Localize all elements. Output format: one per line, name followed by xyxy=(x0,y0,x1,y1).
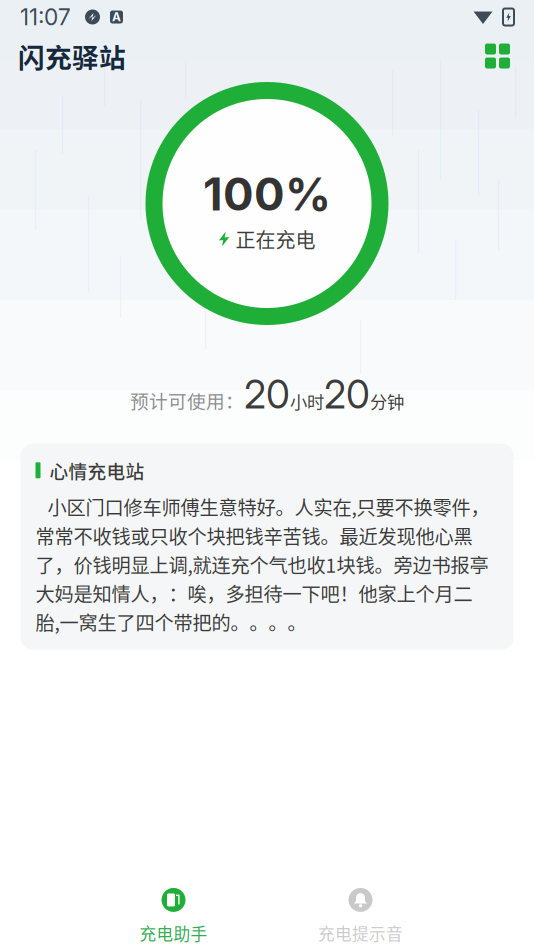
staticText: 预计可使用： xyxy=(130,387,244,414)
button[interactable]: Apps xyxy=(479,37,516,74)
staticText: 心情充电站 xyxy=(49,457,144,484)
staticText: 充电助手 xyxy=(139,921,207,945)
staticText: 20 xyxy=(244,371,290,418)
staticText: 充电提示音 xyxy=(318,921,403,945)
staticText: A xyxy=(112,10,121,24)
staticText: 11:07 xyxy=(20,3,71,31)
button[interactable]: 充电提示音 xyxy=(280,868,440,950)
button[interactable]: 充电助手 xyxy=(93,868,253,950)
staticText: 正在充电 xyxy=(235,224,315,253)
staticText: 分钟 xyxy=(370,389,404,414)
staticText: 小区门口修车师傅生意特好。人实在,只要不换零件，常常不收钱或只收个块把钱辛苦钱。… xyxy=(35,493,489,636)
staticText: 20 xyxy=(324,371,370,418)
staticText: 100% xyxy=(203,167,331,221)
staticText: 小时 xyxy=(290,389,324,414)
staticText: 闪充驿站 xyxy=(18,37,126,75)
